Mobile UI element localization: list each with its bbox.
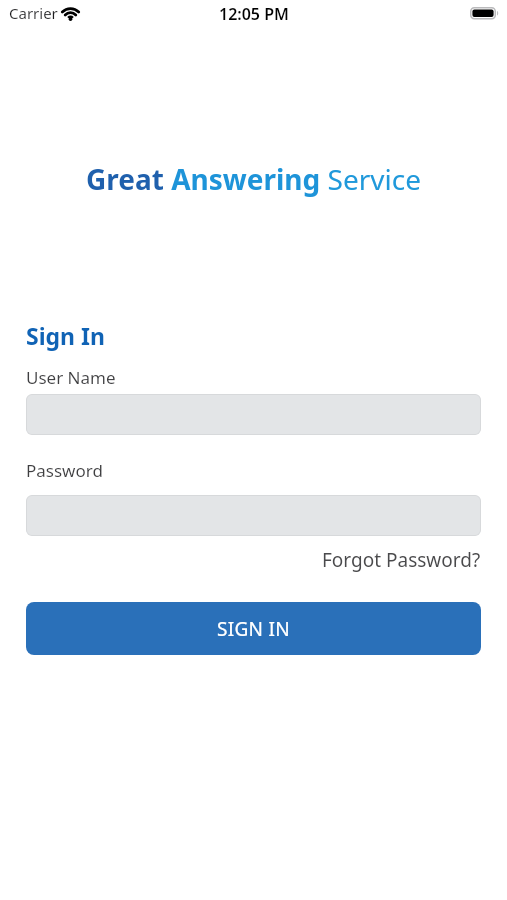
staticText: Great Answering Service — [86, 160, 421, 198]
staticText: Password — [26, 459, 103, 482]
staticText: Sign In — [26, 320, 105, 351]
button[interactable]: Forgot Password? — [322, 547, 481, 573]
button[interactable]: SIGN IN — [26, 602, 481, 655]
staticText: SIGN IN — [217, 616, 291, 642]
staticText: Carrier — [9, 3, 58, 23]
staticText: 12:05 PM — [219, 3, 289, 25]
staticText: User Name — [26, 366, 116, 389]
